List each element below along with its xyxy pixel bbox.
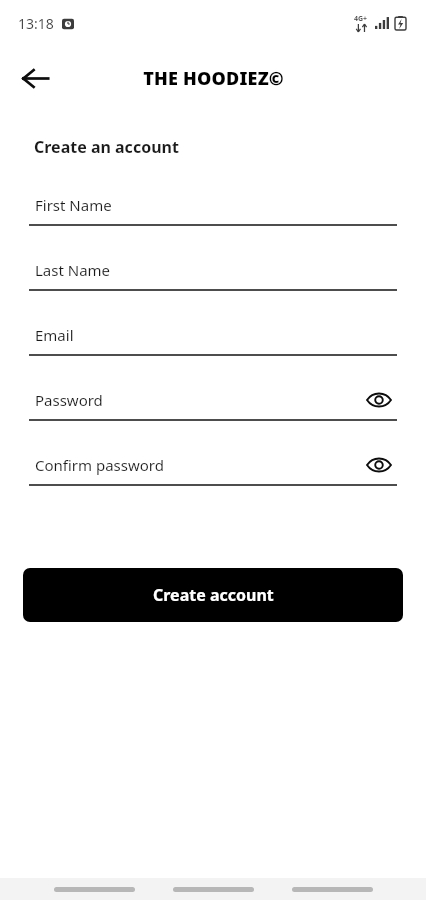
button[interactable]: Navigation (54, 887, 135, 892)
button[interactable]: Show password (361, 382, 397, 418)
staticText: Last Name (35, 260, 111, 280)
staticText: 4G+ (354, 14, 368, 24)
button[interactable]: First Name (29, 186, 397, 226)
button[interactable]: Password (29, 381, 397, 421)
button[interactable]: Navigation (292, 887, 373, 892)
staticText: First Name (35, 195, 112, 215)
button[interactable]: Show password (361, 447, 397, 483)
button[interactable]: Navigation (173, 887, 254, 892)
staticText: THE HOODIEZ© (143, 66, 284, 91)
staticText: Email (35, 325, 74, 345)
staticText: Confirm password (35, 455, 164, 475)
button[interactable]: Create account (23, 568, 403, 622)
button[interactable]: Confirm password (29, 446, 397, 486)
button[interactable]: Back (11, 54, 59, 102)
staticText: Create an account (34, 136, 179, 158)
button[interactable]: Last Name (29, 251, 397, 291)
staticText: 13:18 (18, 14, 54, 33)
staticText: Password (35, 390, 103, 410)
staticText: Create account (153, 584, 274, 606)
button[interactable]: Email (29, 316, 397, 356)
